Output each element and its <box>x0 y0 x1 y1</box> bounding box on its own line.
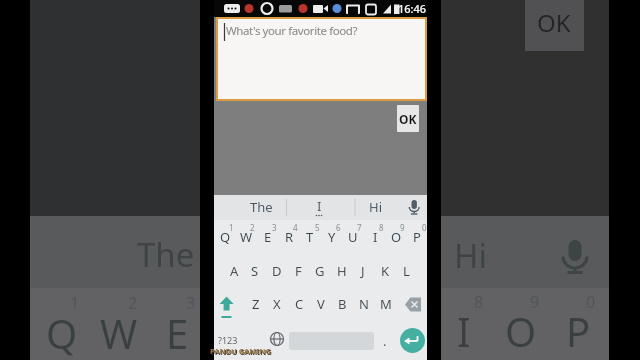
staticText: 5 <box>315 222 320 233</box>
staticText: ?123 <box>218 334 238 346</box>
button[interactable]: I <box>362 223 388 251</box>
button[interactable]: OK <box>397 105 419 132</box>
staticText: What's your favorite food? <box>226 23 358 39</box>
staticText: 6 <box>336 222 341 233</box>
button[interactable]: S <box>242 257 268 285</box>
staticText: The <box>137 232 195 277</box>
staticText: U <box>348 228 358 246</box>
staticText: 3 <box>186 292 196 314</box>
staticText: D <box>272 262 282 280</box>
staticText: Q <box>220 228 231 246</box>
button[interactable]: ?123 <box>205 329 251 350</box>
button[interactable]: V <box>308 290 334 318</box>
button[interactable]: C <box>286 290 312 318</box>
button[interactable]: O <box>383 223 409 251</box>
staticText: A <box>230 262 239 280</box>
staticText: Y <box>328 228 336 246</box>
staticText: E <box>166 306 189 360</box>
button[interactable]: K <box>372 257 398 285</box>
staticText: O <box>505 304 537 358</box>
staticText: 16:46 <box>398 1 427 16</box>
button[interactable] <box>216 17 427 101</box>
staticText: PANDU GAMING <box>210 346 271 356</box>
staticText: R <box>285 228 294 246</box>
staticText: M <box>380 295 392 313</box>
button[interactable]: F <box>285 257 311 285</box>
staticText: The <box>250 198 273 216</box>
staticText: Z <box>252 295 260 313</box>
staticText: OK <box>537 6 571 39</box>
button[interactable]: Z <box>243 290 269 318</box>
staticText: B <box>338 295 347 313</box>
button[interactable] <box>400 328 425 353</box>
button[interactable]: J <box>350 257 376 285</box>
staticText: J <box>361 262 365 280</box>
staticText: P <box>566 304 591 358</box>
staticText: 1 <box>229 222 234 233</box>
button[interactable]: W <box>233 223 259 251</box>
button[interactable]: N <box>351 290 377 318</box>
staticText: 7 <box>357 222 362 233</box>
staticText: G <box>315 262 325 280</box>
staticText: . <box>383 332 387 350</box>
staticText: S <box>251 262 259 280</box>
staticText: L <box>403 262 410 280</box>
button[interactable]: D <box>264 257 290 285</box>
staticText: 9 <box>530 291 540 313</box>
button[interactable]: Q <box>212 223 238 251</box>
staticText: K <box>381 262 390 280</box>
staticText: 1 <box>70 292 80 314</box>
staticText: W <box>100 306 138 360</box>
staticText: 0 <box>586 291 596 313</box>
button[interactable]: M <box>373 290 399 318</box>
staticText: O <box>391 228 402 246</box>
button[interactable]: R <box>276 223 302 251</box>
staticText: H <box>337 262 347 280</box>
staticText: 8 <box>379 222 384 233</box>
staticText: F <box>295 262 302 280</box>
staticText: E <box>264 228 272 246</box>
staticText: Hi <box>454 233 487 278</box>
button[interactable]: G <box>307 257 333 285</box>
button[interactable]: E <box>255 223 281 251</box>
staticText: PANDU GAMING <box>211 347 272 357</box>
button[interactable]: Y <box>319 223 345 251</box>
button[interactable]: B <box>329 290 355 318</box>
button[interactable]: P <box>404 223 430 251</box>
button[interactable]: A <box>221 257 247 285</box>
button[interactable]: X <box>264 290 290 318</box>
button[interactable]: U <box>340 223 366 251</box>
staticText: OK <box>399 111 417 127</box>
button[interactable]: L <box>393 257 419 285</box>
staticText: V <box>317 295 325 313</box>
staticText: 0 <box>422 222 427 233</box>
button[interactable]: H <box>329 257 355 285</box>
staticText: T <box>306 228 314 246</box>
staticText: I <box>457 304 471 358</box>
staticText: I <box>373 228 378 246</box>
staticText: C <box>295 295 304 313</box>
button[interactable]: Hi <box>357 193 394 221</box>
staticText: 2 <box>128 292 138 314</box>
staticText: I <box>317 197 322 215</box>
button[interactable]: The <box>237 193 286 221</box>
button[interactable]: . <box>372 327 398 355</box>
staticText: N <box>359 295 369 313</box>
staticText: Q <box>46 306 78 360</box>
staticText: 9 <box>400 222 405 233</box>
staticText: 2 <box>250 222 255 233</box>
staticText: 3 <box>272 222 277 233</box>
staticText: X <box>273 295 281 313</box>
staticText: W <box>240 228 253 246</box>
staticText: 8 <box>474 291 484 313</box>
staticText: 4 <box>293 222 298 233</box>
button[interactable]: I <box>306 192 332 220</box>
staticText: Hi <box>369 198 382 216</box>
button[interactable]: T <box>297 223 323 251</box>
staticText: P <box>413 228 421 246</box>
